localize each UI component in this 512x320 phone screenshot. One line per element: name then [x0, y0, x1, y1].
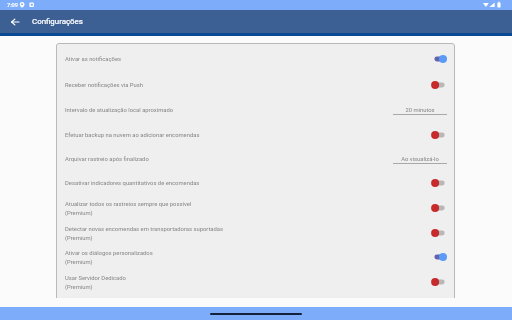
button[interactable]: Switch off [431, 176, 447, 190]
button[interactable]: Arquivar rastreio após finalizado [56, 149, 455, 169]
button[interactable]: Receber notificações via Push [56, 75, 455, 95]
staticText: (Premium) [65, 235, 93, 242]
staticText: Desativar indicadores quantitativos de e… [65, 180, 200, 187]
button[interactable]: 20 minutos [393, 100, 447, 120]
button[interactable]: Atualizar todos os rastreios sempre que … [56, 198, 455, 218]
button[interactable]: Ativar os diálogos personalizados [56, 247, 455, 267]
button[interactable]: Ao visualizá-lo [393, 149, 447, 169]
button[interactable]: Switch off [431, 201, 447, 215]
button[interactable]: Switch on [431, 52, 447, 66]
staticText: Receber notificações via Push [65, 82, 144, 89]
button[interactable]: Efetuar backup na nuvem ao adicionar enc… [56, 125, 455, 145]
staticText: 20 minutos [405, 107, 435, 114]
button[interactable]: Back [0, 10, 29, 33]
staticText: Atualizar todos os rastreios sempre que … [65, 201, 192, 208]
staticText: Arquivar rastreio após finalizado [65, 156, 149, 163]
staticText: (Premium) [65, 210, 93, 217]
staticText: Configurações [32, 17, 83, 26]
staticText: Ao visualizá-lo [401, 156, 439, 163]
staticText: Ativar os diálogos personalizados [65, 250, 153, 257]
button[interactable]: Desativar indicadores quantitativos de e… [56, 173, 455, 193]
staticText: Detectar novas encomendas em transportad… [65, 226, 223, 233]
staticText: (Premium) [65, 284, 93, 291]
button[interactable]: Intervalo de atualização local aproximad… [56, 100, 455, 120]
staticText: Usar Servidor Dedicado [65, 275, 126, 282]
button[interactable]: Switch off [431, 128, 447, 142]
staticText: Efetuar backup na nuvem ao adicionar enc… [65, 132, 200, 139]
button[interactable]: Detectar novas encomendas em transportad… [56, 223, 455, 243]
button[interactable]: Usar Servidor Dedicado [56, 272, 455, 292]
button[interactable]: Switch off [431, 275, 447, 289]
staticText: (Premium) [65, 259, 93, 266]
button[interactable]: Ativar as notificações [56, 49, 455, 69]
button[interactable]: Switch off [431, 226, 447, 240]
staticText: 7:09 [7, 2, 18, 9]
button[interactable]: Switch on [431, 250, 447, 264]
staticText: Ativar as notificações [65, 56, 122, 63]
button[interactable]: Switch off [431, 78, 447, 92]
staticText: Intervalo de atualização local aproximad… [65, 107, 174, 114]
